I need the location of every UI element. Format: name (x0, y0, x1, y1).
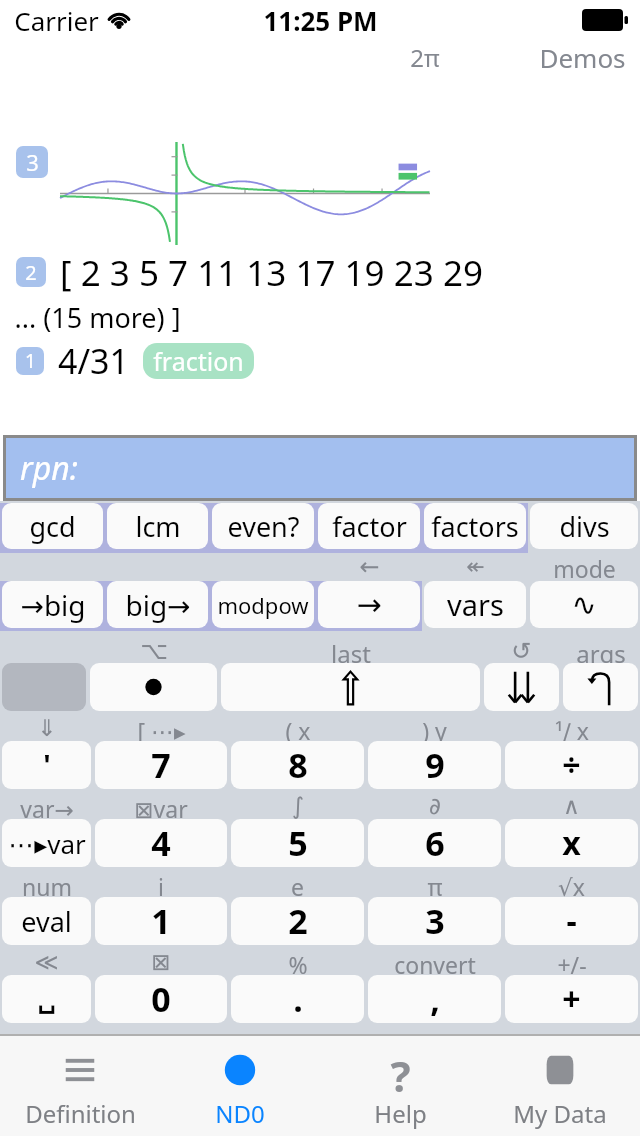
button[interactable]: My Data (480, 1035, 640, 1136)
button[interactable]: , (368, 975, 501, 1023)
button[interactable]: 5 (231, 819, 364, 867)
staticText: fraction (153, 344, 244, 378)
button[interactable]: 6 (368, 819, 501, 867)
staticText: divs (559, 508, 610, 545)
staticText: 4/31 (58, 338, 129, 384)
staticText: convert (394, 949, 476, 975)
button[interactable]: factor (318, 503, 420, 549)
button[interactable]: ⋯▸var (2, 819, 91, 867)
staticText: var→ (20, 793, 74, 819)
button[interactable]: Dot operator (90, 663, 217, 711)
staticText: big→ (125, 586, 191, 624)
staticText: - (566, 899, 577, 943)
staticText: ... (15 more) ] (14, 299, 181, 336)
staticText: x (562, 821, 581, 865)
staticText: My Data (513, 1097, 607, 1130)
button[interactable]: 2 (231, 897, 364, 945)
staticText: , (430, 976, 440, 1022)
button[interactable]: lcm (107, 503, 208, 549)
staticText: ⌥ (140, 637, 168, 663)
staticText: modpow (217, 590, 309, 620)
button[interactable]: Demos (539, 40, 626, 74)
staticText: vars (447, 585, 504, 624)
button[interactable]: 2π (410, 41, 440, 74)
staticText: 1 (151, 898, 171, 944)
staticText: [ ⋯▸ (137, 715, 186, 741)
staticText: ↞ (466, 554, 485, 580)
button[interactable]: ÷ (505, 741, 638, 789)
button[interactable]: Disabled (2, 663, 86, 711)
staticText: 4 (151, 820, 171, 866)
staticText: 9 (425, 742, 445, 788)
staticText: 2 (288, 898, 308, 944)
staticText: √x (558, 871, 585, 897)
button[interactable]: gcd (2, 503, 103, 549)
button[interactable]: 8 (231, 741, 364, 789)
staticText: π (427, 871, 443, 897)
staticText: Demos (539, 40, 626, 74)
button[interactable]: ? (320, 1035, 480, 1136)
staticText: e (291, 871, 304, 897)
button[interactable]: - (505, 897, 638, 945)
staticText: % (288, 949, 308, 975)
staticText: 8 (288, 742, 308, 788)
staticText: ÷ (562, 743, 581, 787)
button[interactable]: ∿ (530, 581, 638, 628)
staticText: ⋯▸var (8, 826, 86, 861)
staticText: factor (332, 508, 407, 545)
staticText: args (576, 637, 626, 663)
staticText: lcm (135, 508, 181, 545)
button[interactable]: Definition (0, 1035, 160, 1136)
staticText: [ 2 3 5 7 11 13 17 19 23 29 (60, 249, 483, 297)
staticText: ) y (422, 715, 447, 741)
button[interactable]: 9 (368, 741, 501, 789)
button[interactable]: x (505, 819, 638, 867)
button[interactable]: 7 (95, 741, 227, 789)
button[interactable]: → (318, 581, 420, 628)
staticText: ∿ (571, 587, 597, 622)
button[interactable]: 3 (368, 897, 501, 945)
button[interactable]: 0 (95, 975, 227, 1023)
staticText: rpn: (20, 446, 78, 490)
staticText: ND0 (215, 1097, 265, 1130)
button[interactable]: ␣ (2, 975, 91, 1023)
staticText: ∫ (292, 793, 304, 819)
staticText: ' (43, 746, 51, 784)
button[interactable]: vars (424, 581, 526, 628)
button[interactable]: Drop (484, 663, 559, 711)
button[interactable]: divs (530, 503, 638, 549)
staticText: + (562, 977, 581, 1021)
staticText: →big (20, 586, 86, 624)
button[interactable]: Args (563, 663, 638, 711)
button[interactable]: →big (2, 581, 103, 628)
button[interactable]: rpn: (6, 438, 634, 498)
staticText: ← (359, 553, 380, 581)
button[interactable]: modpow (212, 581, 314, 628)
staticText: even? (227, 508, 300, 545)
staticText: 0 (151, 976, 171, 1022)
staticText: 3 (26, 147, 39, 177)
staticText: Definition (25, 1097, 136, 1130)
staticText: ( x (285, 715, 311, 741)
button[interactable]: even? (212, 503, 314, 549)
staticText: 2π (410, 41, 440, 74)
staticText: 2 (25, 259, 37, 286)
button[interactable]: ND0 (160, 1035, 320, 1136)
button[interactable]: ' (2, 741, 91, 789)
staticText: ∧ (563, 793, 580, 819)
button[interactable]: 4 (95, 819, 227, 867)
staticText: factors (431, 508, 519, 545)
staticText: ¹∕ x (555, 715, 589, 741)
button[interactable]: Last / push (221, 663, 480, 711)
button[interactable]: + (505, 975, 638, 1023)
button[interactable]: . (231, 975, 364, 1023)
button[interactable]: big→ (107, 581, 208, 628)
button[interactable]: 1 (95, 897, 227, 945)
staticText: Carrier (14, 3, 99, 38)
staticText: num (22, 871, 72, 897)
staticText: i (158, 871, 164, 897)
button[interactable]: eval (2, 897, 91, 945)
staticText: ? (390, 1047, 411, 1093)
staticText: eval (21, 903, 72, 940)
button[interactable]: factors (424, 503, 526, 549)
